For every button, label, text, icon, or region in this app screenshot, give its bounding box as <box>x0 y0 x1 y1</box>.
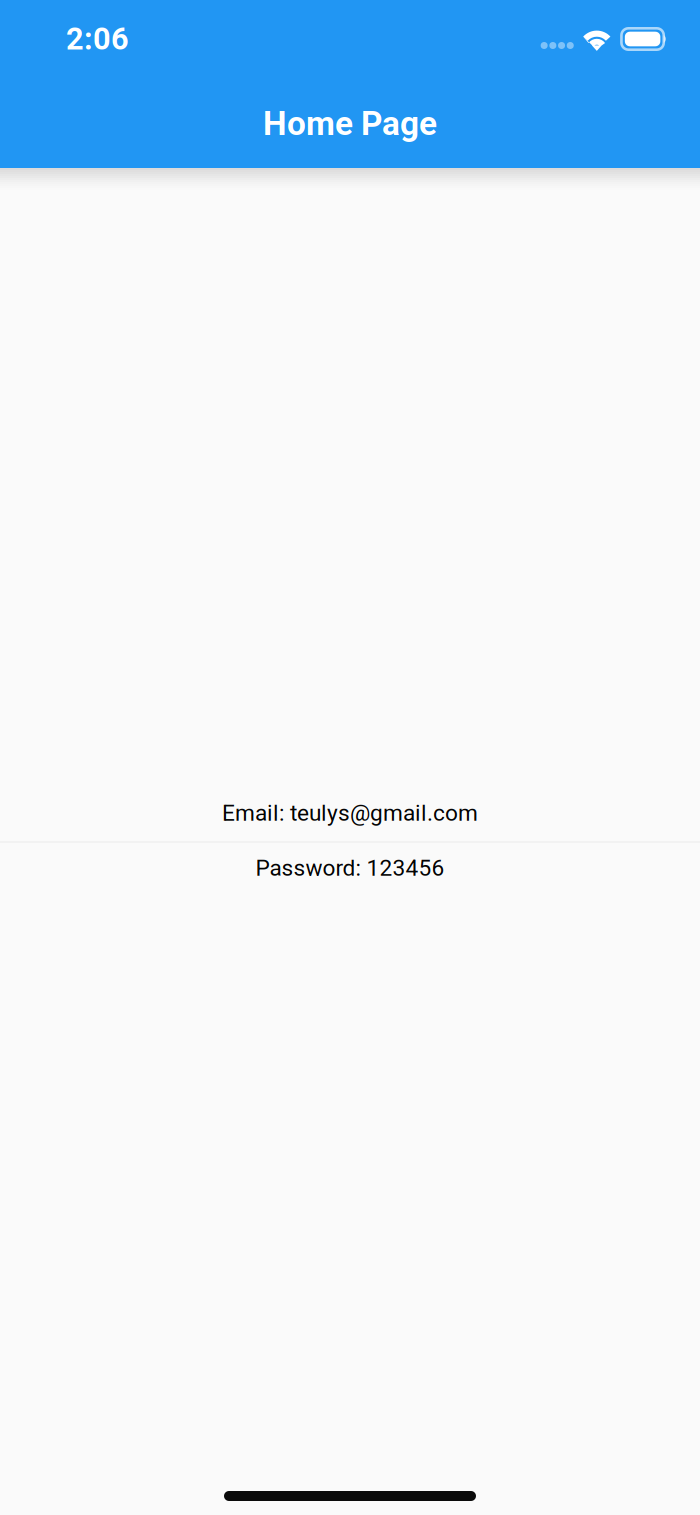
staticText: Email: teulys@gmail.com <box>222 800 478 826</box>
staticText: 2:06 <box>66 21 129 57</box>
staticText: Home Page <box>263 104 437 143</box>
button[interactable]: Password: 123456 <box>0 843 700 893</box>
staticText: Password: 123456 <box>255 855 444 881</box>
button[interactable]: Email: teulys@gmail.com <box>0 785 700 841</box>
